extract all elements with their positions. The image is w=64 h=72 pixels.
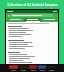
button[interactable]: Menu	[7, 14, 10, 17]
button[interactable]	[19, 65, 28, 71]
staticText: Collection of 42 Android Samples	[7, 3, 58, 7]
button[interactable]	[6, 18, 24, 22]
button[interactable]	[11, 14, 53, 17]
button[interactable]	[29, 65, 37, 71]
button[interactable]	[41, 18, 58, 22]
button[interactable]	[47, 65, 55, 71]
button[interactable]	[9, 65, 18, 71]
button[interactable]	[24, 18, 41, 22]
button[interactable]	[38, 65, 46, 71]
button[interactable]: More options	[54, 14, 57, 17]
